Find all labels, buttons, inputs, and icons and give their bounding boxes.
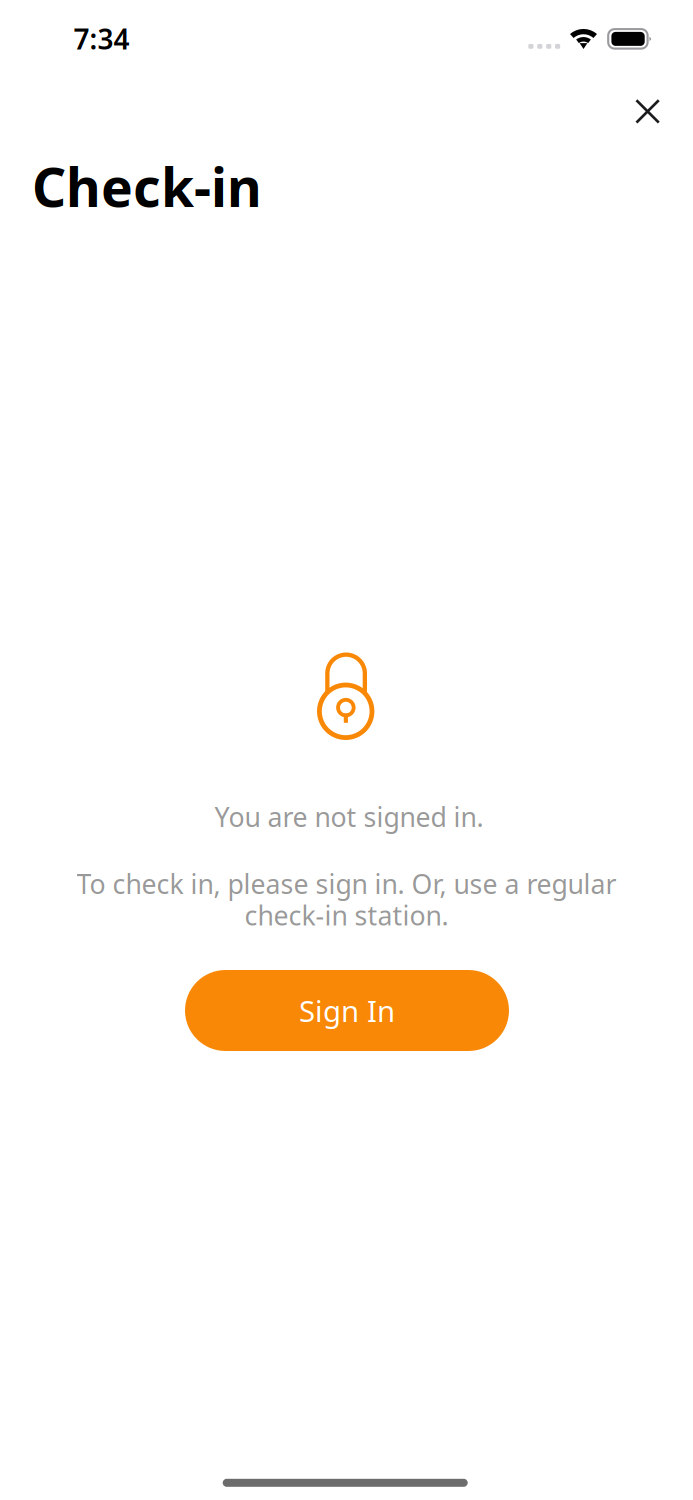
staticText: Sign In [299, 991, 395, 1030]
staticText: You are not signed in. [214, 799, 483, 834]
staticText: To check in, please sign in. Or, use a r… [76, 866, 616, 901]
button[interactable]: Close [619, 82, 677, 140]
staticText: Check-in [32, 151, 262, 222]
staticText: check-in station. [244, 897, 448, 933]
button[interactable]: Sign In [185, 970, 509, 1051]
staticText: 7:34 [73, 20, 129, 57]
